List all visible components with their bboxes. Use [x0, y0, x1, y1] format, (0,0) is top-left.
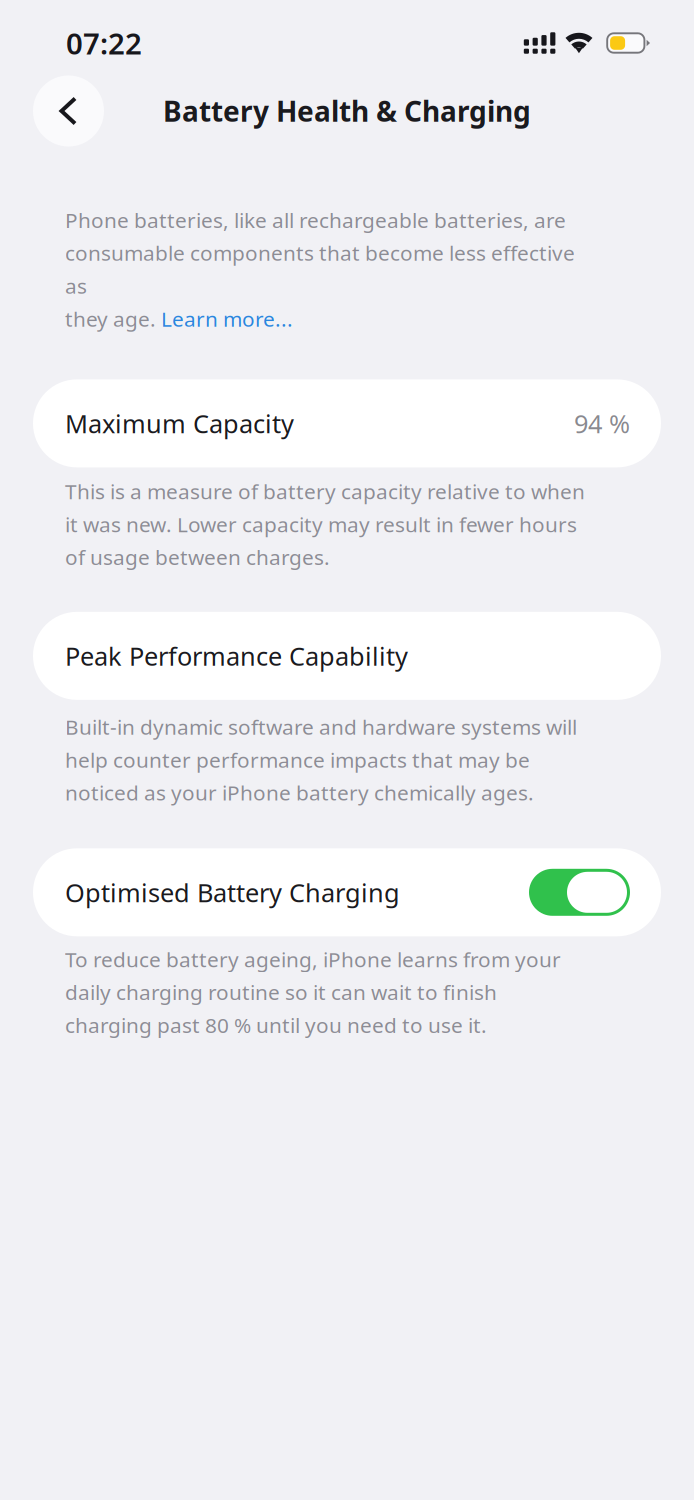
staticText: To reduce battery ageing, iPhone learns …: [65, 945, 561, 1039]
staticText: Battery Health & Charging: [163, 92, 531, 130]
staticText: they age.: [65, 305, 161, 332]
button[interactable]: Maximum Capacity: [33, 379, 661, 467]
staticText: Peak Performance Capability: [65, 639, 408, 673]
staticText: Built-in dynamic software and hardware s…: [65, 713, 577, 806]
staticText: Optimised Battery Charging: [65, 875, 400, 909]
staticText: This is a measure of battery capacity re…: [65, 477, 585, 571]
button[interactable]: Peak Performance Capability: [33, 612, 661, 700]
staticText: 94 %: [574, 407, 630, 440]
staticText: Phone batteries, like all rechargeable b…: [65, 206, 575, 299]
staticText: Maximum Capacity: [65, 407, 294, 440]
button[interactable]: Back: [33, 75, 104, 146]
button[interactable]: Optimised Battery Charging: [33, 848, 661, 936]
button[interactable]: Learn more...: [161, 305, 293, 332]
staticText: 07:22: [66, 23, 142, 62]
staticText: Learn more...: [161, 305, 293, 332]
